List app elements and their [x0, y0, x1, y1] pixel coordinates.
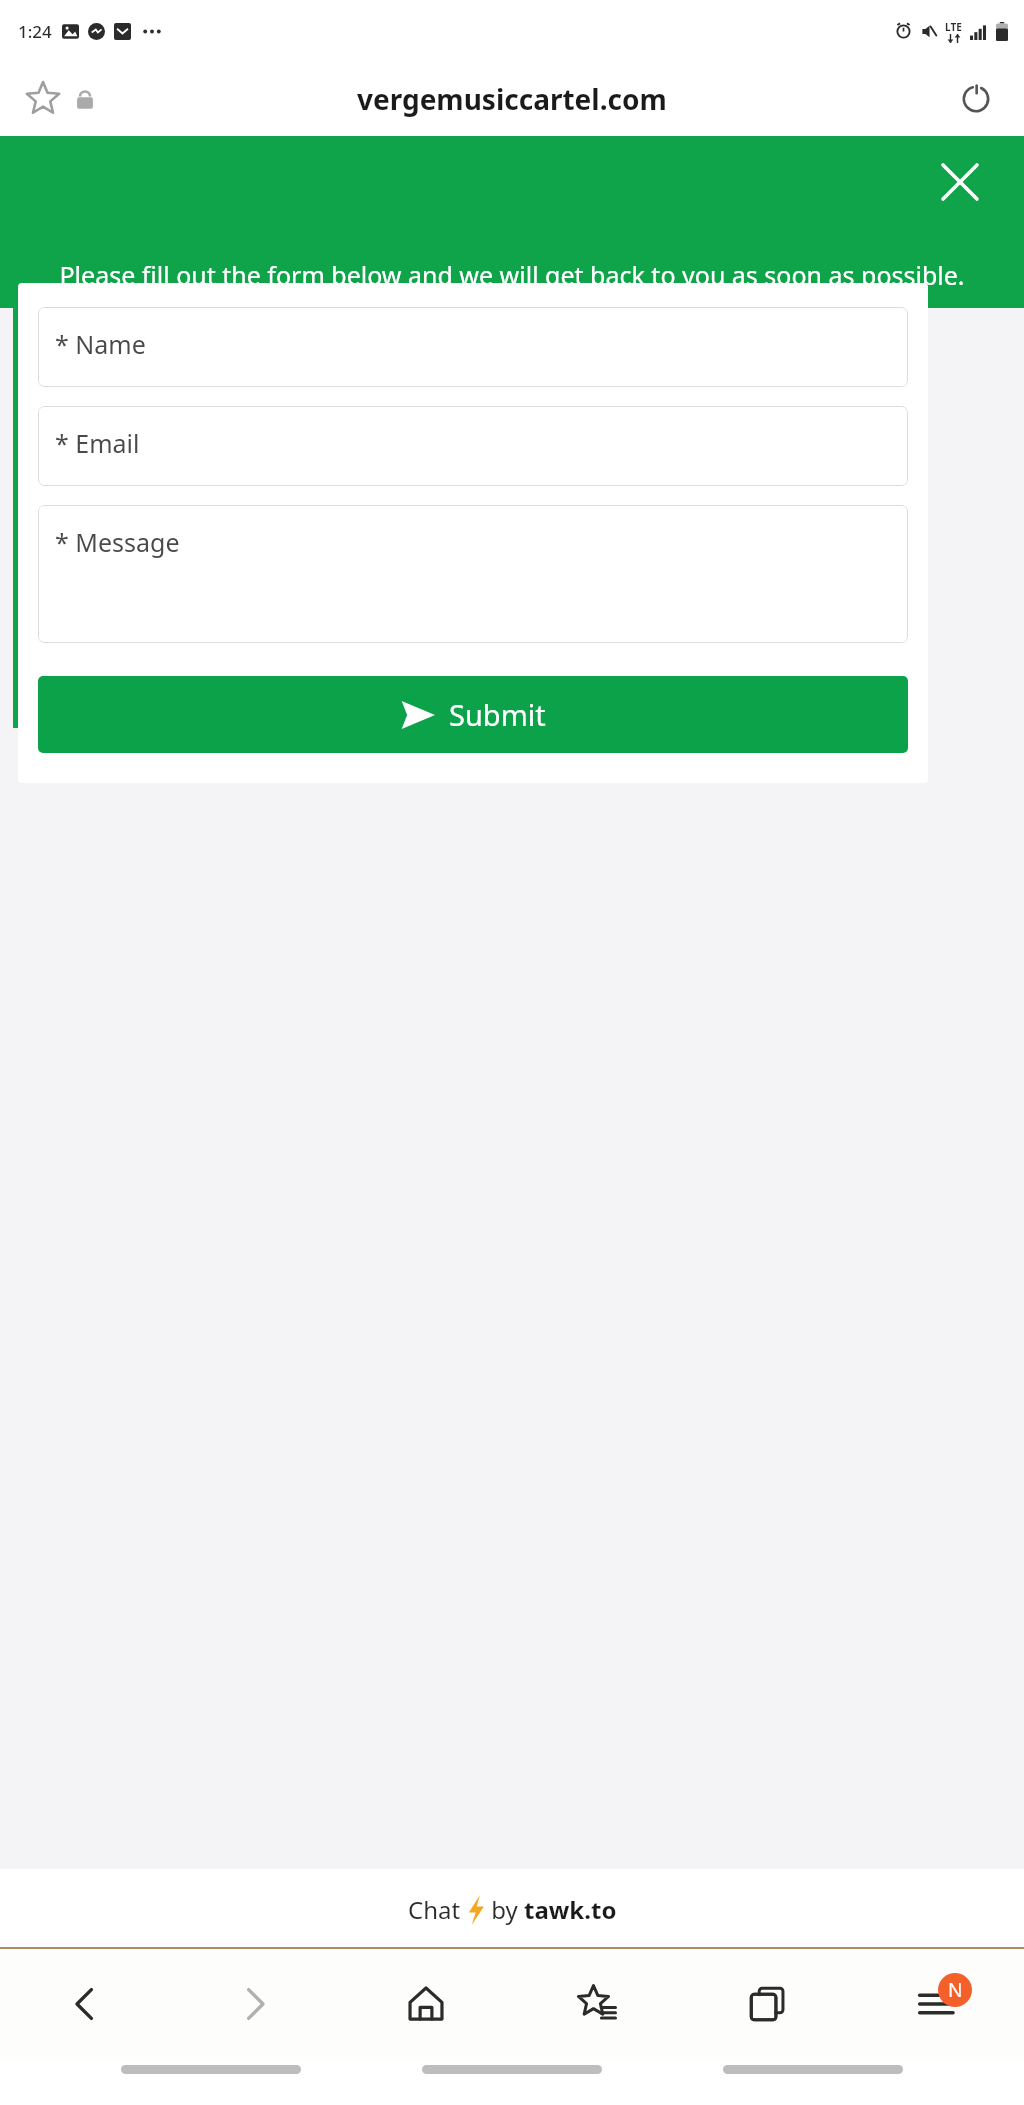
button[interactable]: * Message	[38, 505, 908, 643]
button[interactable]: Bookmark	[20, 76, 66, 122]
staticText: * Email	[55, 426, 140, 460]
button[interactable]: Forward	[170, 1949, 340, 2059]
staticText: * Message	[55, 525, 180, 559]
button[interactable]: Reload	[950, 73, 1002, 125]
staticText: 1:24	[18, 20, 52, 43]
button[interactable]: * Email	[38, 406, 908, 486]
button[interactable]: Submit	[38, 676, 908, 753]
button[interactable]: Bookmarks	[511, 1949, 682, 2059]
staticText: Chat	[408, 1893, 467, 1926]
staticText: Please fill out the form below and we wi…	[22, 258, 1002, 292]
staticText: * Name	[55, 327, 146, 361]
button[interactable]: Back	[0, 1949, 170, 2059]
staticText: Submit	[449, 695, 546, 734]
button[interactable]: Menu	[853, 1949, 1024, 2059]
staticText: tawk.to	[524, 1893, 617, 1926]
button[interactable]: Close	[932, 154, 988, 210]
button[interactable]: Chat	[0, 1869, 1024, 1949]
staticText: vergemusiccartel.com	[357, 80, 667, 118]
staticText: by	[485, 1893, 524, 1926]
button[interactable]: * Name	[38, 307, 908, 387]
staticText: N	[948, 1977, 963, 2003]
staticText: LTE	[945, 20, 962, 34]
button[interactable]: Home	[340, 1949, 511, 2059]
button[interactable]: Tabs	[682, 1949, 853, 2059]
